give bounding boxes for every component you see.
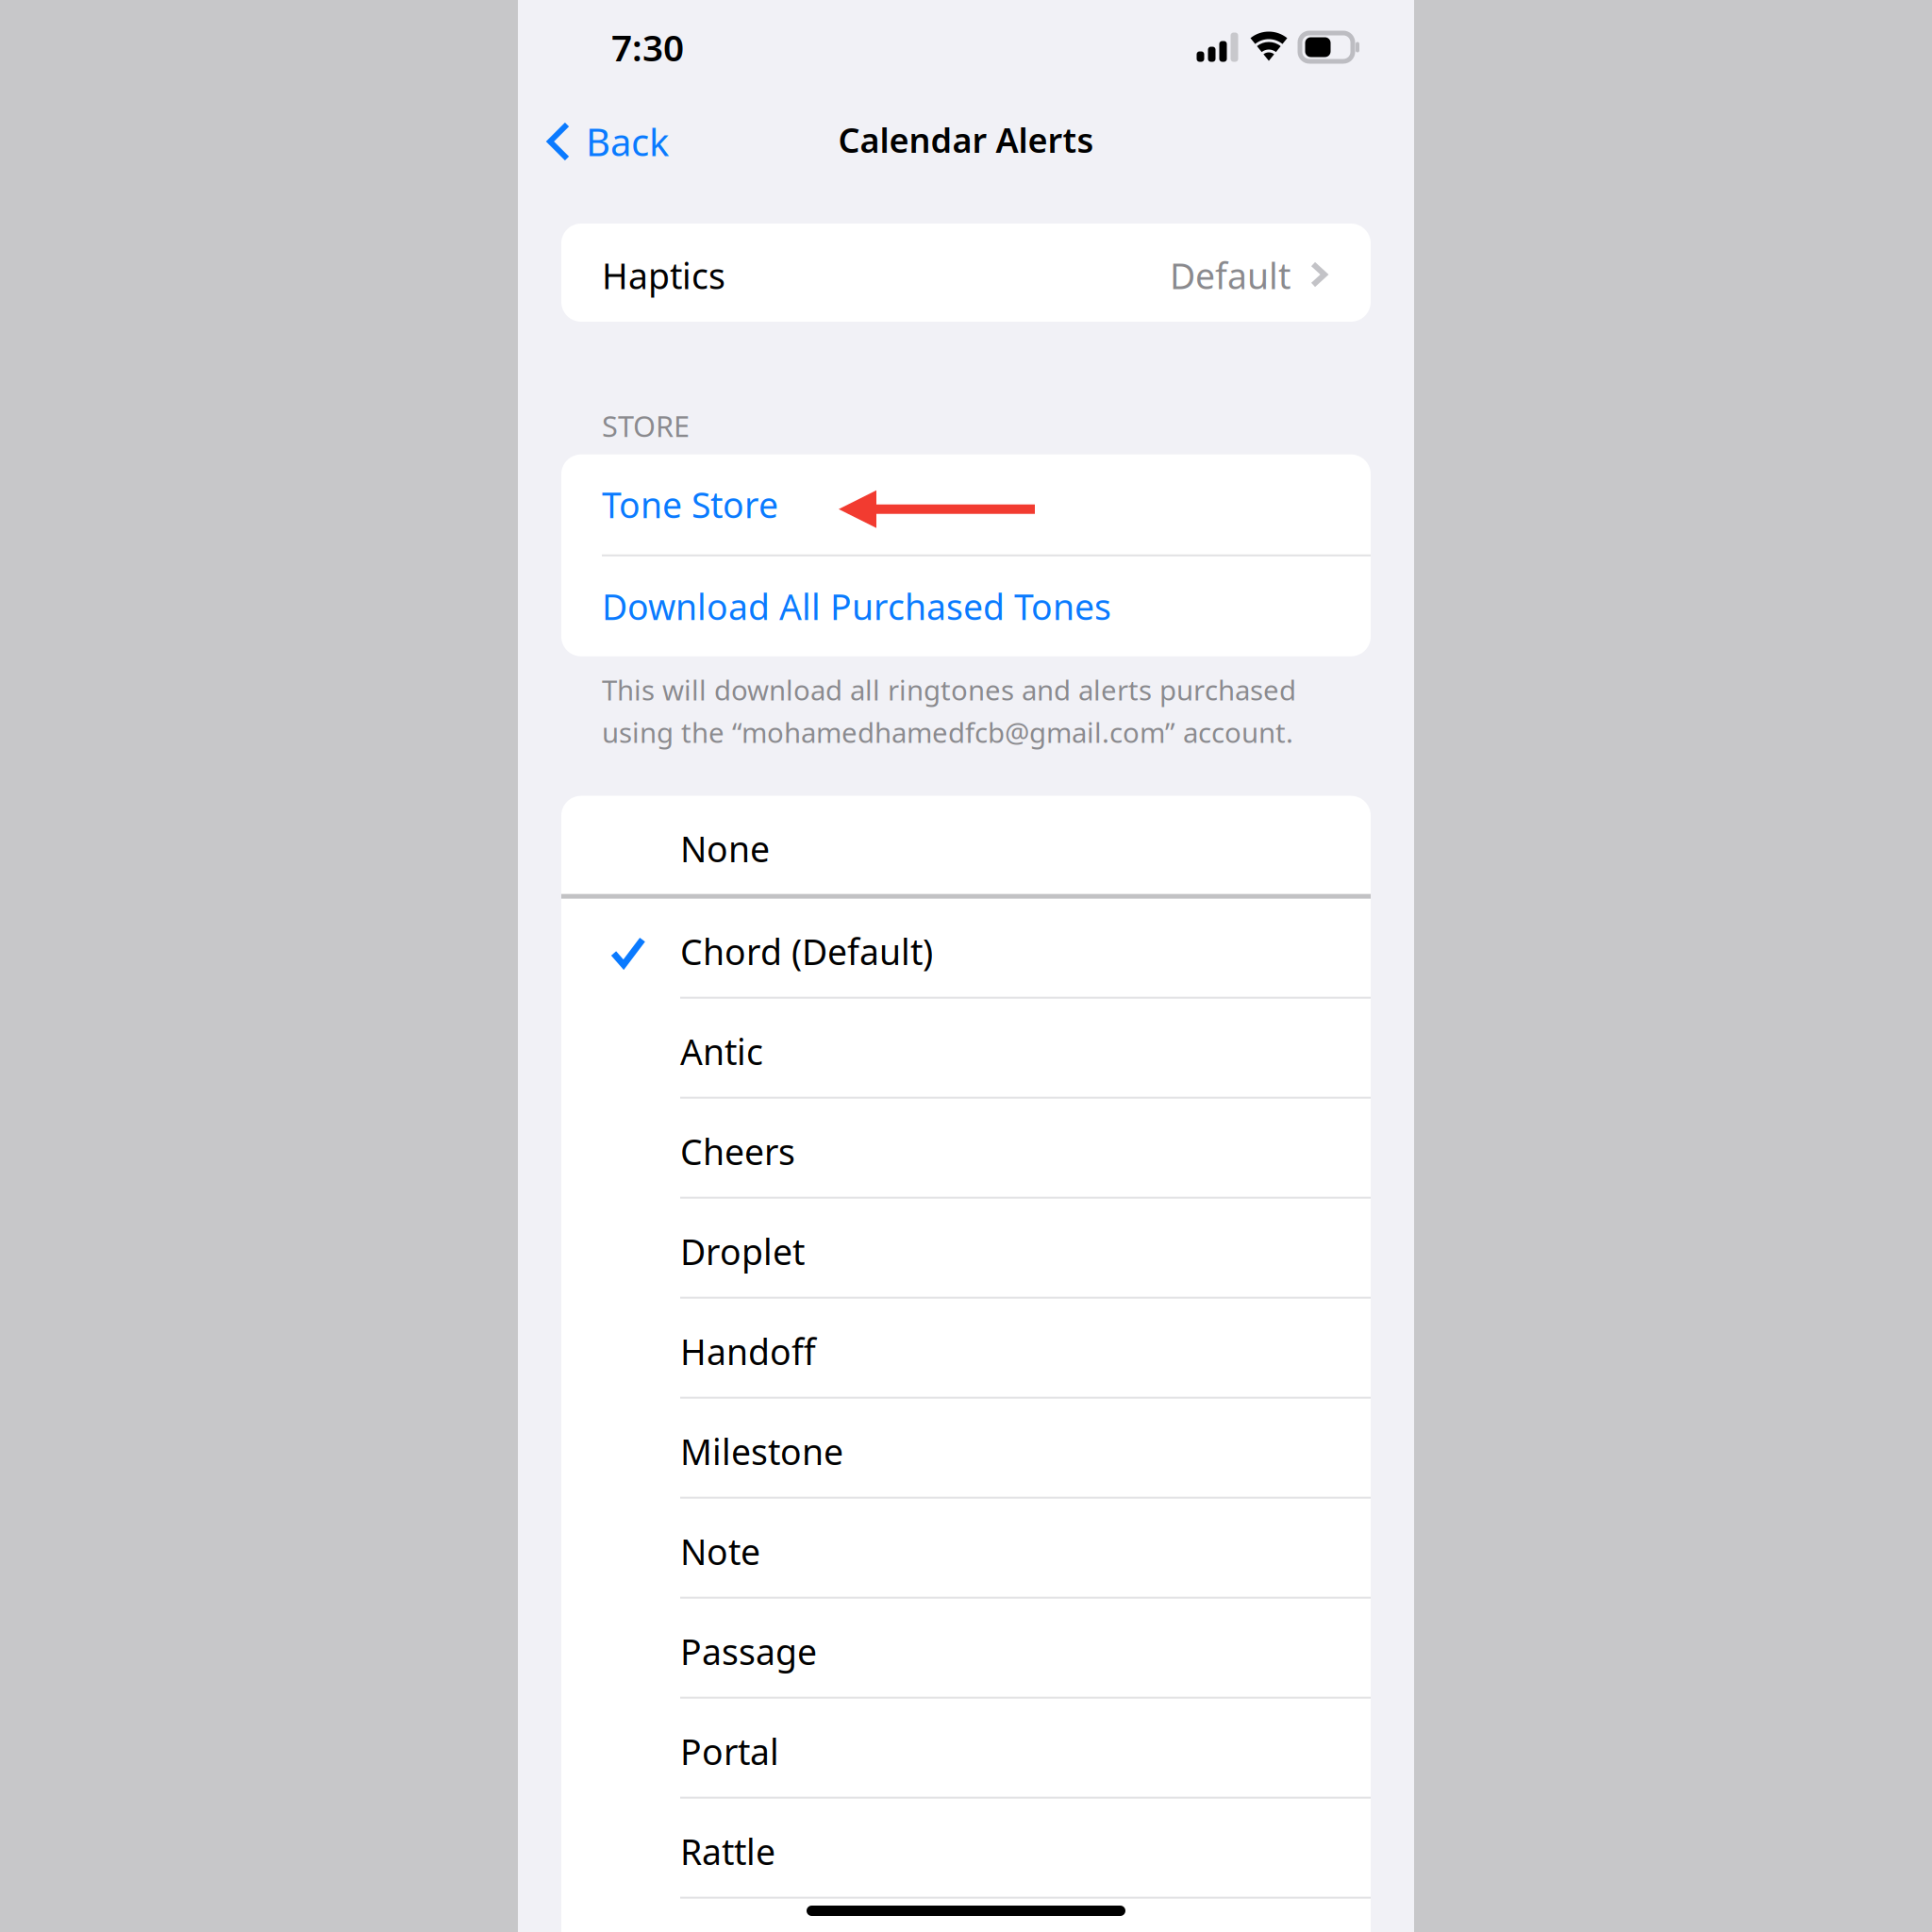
button[interactable]: Chord (Default)	[561, 899, 1371, 997]
button[interactable]: Milestone	[561, 1399, 1371, 1497]
staticText: Calendar Alerts	[838, 117, 1094, 162]
button[interactable]: Back	[518, 98, 669, 182]
button[interactable]: Note	[561, 1499, 1371, 1597]
staticText: Rattle	[680, 1828, 775, 1875]
button[interactable]: Download All Purchased Tones	[561, 556, 1371, 656]
staticText: Cheers	[680, 1128, 795, 1175]
staticText: Note	[680, 1528, 760, 1575]
button[interactable]: Handoff	[561, 1299, 1371, 1397]
button[interactable]: None	[561, 796, 1371, 894]
button[interactable]: Rattle	[561, 1799, 1371, 1897]
staticText: Tone Store	[602, 481, 778, 528]
staticText: Antic	[680, 1028, 763, 1075]
button[interactable]: Cheers	[561, 1099, 1371, 1197]
staticText: Portal	[680, 1728, 779, 1775]
staticText: STORE	[602, 407, 690, 445]
staticText: This will download all ringtones and ale…	[602, 671, 1296, 708]
button[interactable]: Antic	[561, 999, 1371, 1097]
button[interactable]: Tone Store	[561, 454, 1371, 554]
staticText: Passage	[680, 1628, 817, 1675]
staticText: Back	[586, 116, 669, 167]
staticText: Haptics	[602, 252, 725, 299]
button[interactable]: Passage	[561, 1599, 1371, 1697]
button[interactable]: Haptics	[561, 224, 1371, 322]
staticText: Droplet	[680, 1228, 805, 1275]
button[interactable]: Portal	[561, 1699, 1371, 1797]
button[interactable]: Sherwood Forest	[561, 1899, 1371, 1932]
staticText: Milestone	[680, 1428, 843, 1475]
staticText: Chord (Default)	[680, 928, 933, 975]
staticText: Download All Purchased Tones	[602, 583, 1111, 630]
staticText: Handoff	[680, 1328, 816, 1375]
staticText: using the “mohamedhamedfcb@gmail.com” ac…	[602, 714, 1293, 751]
button[interactable]: Droplet	[561, 1199, 1371, 1297]
staticText: 7:30	[611, 23, 684, 71]
staticText: Default	[1170, 252, 1291, 299]
staticText: None	[680, 825, 770, 872]
